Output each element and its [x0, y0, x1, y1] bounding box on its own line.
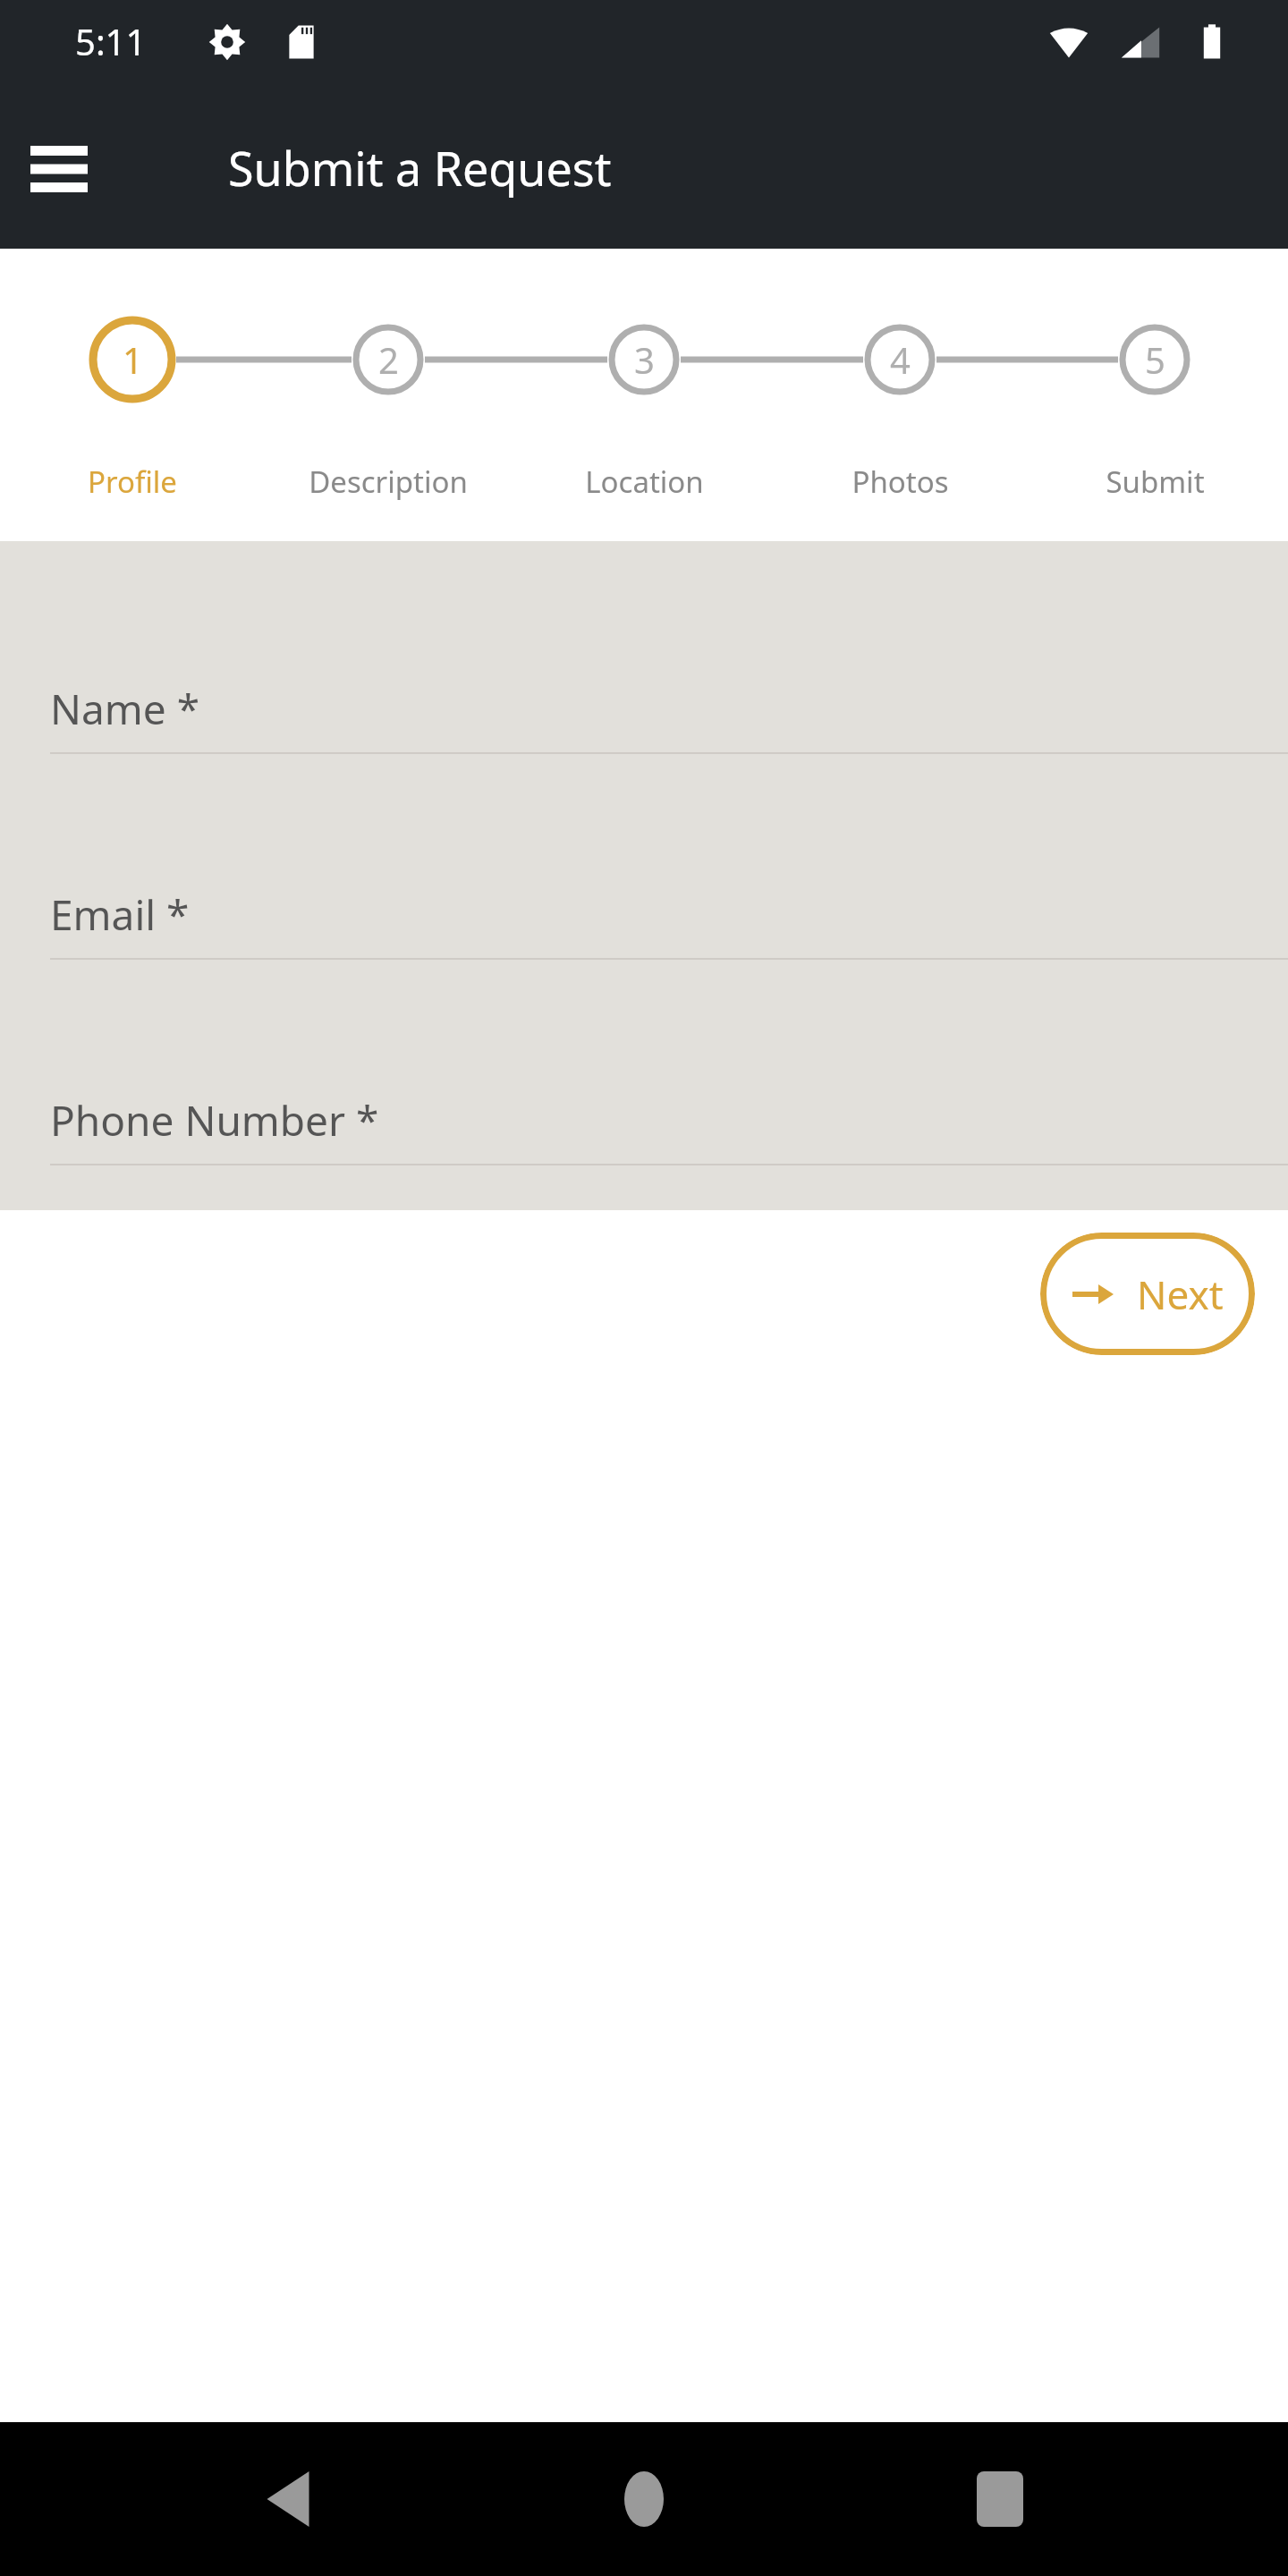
staticText: Phone Number * — [50, 1092, 379, 1148]
staticText: Description — [309, 462, 468, 502]
button[interactable]: 3 — [590, 304, 698, 415]
staticText: Email * — [50, 886, 190, 943]
staticText: Location — [585, 462, 704, 502]
staticText: 5 — [1145, 335, 1165, 384]
staticText: 4 — [890, 335, 911, 384]
staticText: 1 — [123, 335, 143, 384]
button[interactable]: 1 — [79, 304, 186, 415]
button[interactable]: Home — [581, 2436, 707, 2562]
button[interactable]: 2 — [335, 304, 442, 415]
staticText: Photos — [852, 462, 949, 502]
staticText: Next — [1137, 1267, 1224, 1321]
button[interactable]: Next — [1040, 1233, 1255, 1355]
staticText: 2 — [378, 335, 399, 384]
button[interactable]: 5 — [1101, 304, 1208, 415]
button[interactable]: 4 — [846, 304, 953, 415]
staticText: Profile — [88, 462, 177, 502]
button[interactable]: Open navigation menu — [14, 124, 104, 214]
button[interactable]: Phone Number * — [0, 1087, 1288, 1194]
staticText: 3 — [634, 335, 655, 384]
button[interactable]: Email * — [0, 881, 1288, 988]
staticText: Submit — [1106, 462, 1205, 502]
button[interactable]: Name * — [0, 675, 1288, 783]
staticText: 5:11 — [75, 17, 147, 65]
staticText: Submit a Request — [228, 136, 612, 199]
staticText: Name * — [50, 681, 200, 737]
button[interactable]: Back — [225, 2436, 351, 2562]
button[interactable]: Recent apps — [937, 2436, 1063, 2562]
